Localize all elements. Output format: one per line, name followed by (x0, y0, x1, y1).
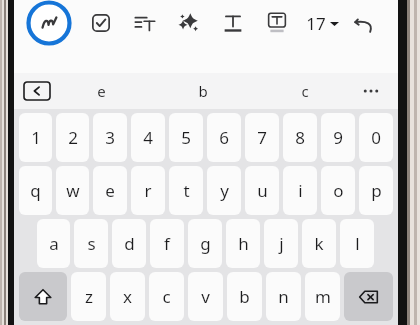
button[interactable]: u (245, 166, 279, 215)
button[interactable]: 7 (245, 113, 279, 162)
staticText: t (183, 179, 190, 202)
button[interactable]: 3 (93, 113, 127, 162)
button[interactable]: q (19, 166, 52, 215)
staticText: o (333, 179, 344, 202)
button[interactable]: 2 (56, 113, 89, 162)
button[interactable]: n (266, 272, 301, 321)
button[interactable]: d (112, 219, 146, 268)
staticText: n (278, 285, 289, 308)
staticText: 3 (105, 126, 115, 149)
staticText: j (279, 232, 284, 255)
staticText: r (144, 179, 152, 202)
staticText: c (162, 285, 171, 308)
button[interactable]: c (149, 272, 184, 321)
staticText: a (49, 232, 59, 255)
staticText: f (164, 232, 170, 255)
button[interactable]: b (227, 272, 262, 321)
button[interactable]: More (356, 73, 386, 109)
button[interactable]: e (93, 166, 127, 215)
staticText: 4 (143, 126, 153, 149)
button[interactable]: w (56, 166, 89, 215)
staticText: k (314, 232, 324, 255)
staticText: b (239, 285, 250, 308)
button[interactable]: Shift (19, 272, 67, 321)
staticText: x (123, 285, 132, 308)
staticText: 0 (371, 126, 381, 149)
button[interactable]: h (226, 219, 260, 268)
button[interactable]: p (359, 166, 393, 215)
button[interactable]: 8 (283, 113, 317, 162)
staticText: 17 (306, 12, 326, 35)
staticText: 1 (31, 126, 41, 149)
staticText: e (105, 179, 115, 202)
button[interactable]: Paragraph style (130, 8, 160, 38)
button[interactable]: 5 (169, 113, 203, 162)
button[interactable]: t (169, 166, 203, 215)
button[interactable]: v (188, 272, 223, 321)
staticText: d (124, 232, 135, 255)
button[interactable]: s (74, 219, 108, 268)
staticText: 8 (295, 126, 305, 149)
button[interactable]: Checklist (86, 8, 116, 38)
button[interactable]: j (264, 219, 298, 268)
button[interactable]: c (254, 73, 356, 109)
staticText: v (201, 285, 210, 308)
button[interactable]: b (152, 73, 254, 109)
button[interactable]: x (110, 272, 145, 321)
staticText: y (220, 179, 229, 202)
button[interactable]: g (188, 219, 222, 268)
button[interactable]: 17 (302, 6, 343, 41)
button[interactable]: y (207, 166, 241, 215)
staticText: b (198, 81, 208, 101)
staticText: m (315, 285, 331, 308)
button[interactable]: k (302, 219, 336, 268)
staticText: q (30, 179, 41, 202)
button[interactable]: Backspace (344, 272, 393, 321)
staticText: i (298, 179, 303, 202)
button[interactable]: Handwriting (26, 0, 72, 46)
button[interactable]: z (71, 272, 106, 321)
button[interactable]: AI assist (174, 8, 204, 38)
staticText: 9 (333, 126, 343, 149)
staticText: 6 (219, 126, 229, 149)
staticText: w (66, 179, 80, 202)
button[interactable]: a (37, 219, 70, 268)
button[interactable]: l (340, 219, 374, 268)
button[interactable]: 6 (207, 113, 241, 162)
staticText: g (200, 232, 211, 255)
button[interactable]: Undo (349, 8, 379, 38)
button[interactable]: Previous (24, 82, 50, 100)
staticText: l (355, 232, 360, 255)
staticText: 7 (257, 126, 267, 149)
staticText: s (87, 232, 96, 255)
button[interactable]: 4 (131, 113, 165, 162)
button[interactable]: 0 (359, 113, 393, 162)
button[interactable]: r (131, 166, 165, 215)
staticText: e (97, 81, 106, 101)
staticText: 5 (181, 126, 191, 149)
staticText: 2 (68, 126, 78, 149)
button[interactable]: 1 (19, 113, 52, 162)
staticText: u (257, 179, 268, 202)
button[interactable]: e (50, 73, 152, 109)
staticText: c (301, 81, 309, 101)
button[interactable]: 9 (321, 113, 355, 162)
button[interactable]: Text format (218, 8, 248, 38)
button[interactable]: o (321, 166, 355, 215)
button[interactable]: m (305, 272, 340, 321)
staticText: p (371, 179, 382, 202)
button[interactable]: i (283, 166, 317, 215)
button[interactable]: f (150, 219, 184, 268)
staticText: z (85, 285, 93, 308)
staticText: h (238, 232, 249, 255)
button[interactable]: Text box (262, 8, 292, 38)
